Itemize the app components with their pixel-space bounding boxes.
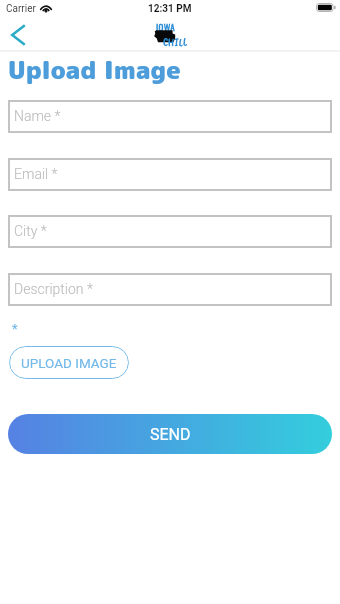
staticText: 12:31 PM bbox=[148, 3, 192, 15]
staticText: SEND bbox=[150, 425, 191, 444]
staticText: CHILL bbox=[163, 35, 188, 49]
button[interactable]: Back bbox=[0, 20, 36, 52]
staticText: Name * bbox=[14, 108, 61, 124]
other: Wi-Fi bbox=[40, 3, 52, 12]
staticText: Description * bbox=[14, 281, 93, 297]
staticText: * bbox=[12, 321, 18, 336]
button[interactable]: Email * bbox=[8, 158, 332, 191]
button[interactable]: UPLOAD IMAGE bbox=[9, 346, 129, 379]
button[interactable]: Description * bbox=[8, 273, 332, 306]
button[interactable]: Name * bbox=[8, 100, 332, 133]
button[interactable]: City * bbox=[8, 215, 332, 248]
staticText: Carrier bbox=[6, 3, 36, 15]
button[interactable]: SEND bbox=[8, 414, 332, 454]
staticText: Email * bbox=[14, 166, 58, 182]
staticText: City * bbox=[14, 223, 47, 239]
staticText: UPLOAD IMAGE bbox=[21, 355, 117, 371]
other: Battery bbox=[316, 3, 336, 12]
staticText: IOWA bbox=[156, 20, 176, 33]
staticText: Upload Image bbox=[8, 52, 181, 87]
